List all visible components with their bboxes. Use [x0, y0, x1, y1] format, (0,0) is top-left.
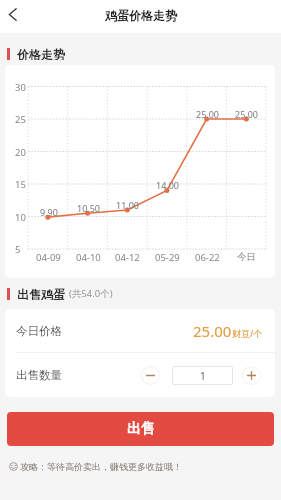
staticText: 25: [15, 113, 26, 126]
button[interactable]: 出售: [7, 412, 274, 446]
staticText: 15: [15, 178, 26, 191]
staticText: 1: [200, 369, 206, 383]
staticText: 25.00: [196, 108, 220, 120]
staticText: 今日: [237, 251, 256, 263]
staticText: 11.00: [116, 199, 140, 211]
staticText: 出售: [127, 420, 155, 438]
staticText: 30: [15, 81, 26, 94]
staticText: 出售数量: [16, 368, 62, 382]
staticText: 20: [15, 146, 26, 159]
staticText: 04-09: [36, 251, 61, 264]
button[interactable]: Increase quantity: [242, 366, 261, 385]
staticText: 攻略：等待高价卖出，赚钱更多收益哦！: [20, 461, 182, 472]
staticText: 04-12: [115, 251, 140, 264]
staticText: 价格走势: [17, 47, 65, 60]
staticText: 25.00: [235, 108, 259, 120]
staticText: 25.00: [193, 321, 232, 341]
staticText: 05-29: [155, 251, 180, 264]
staticText: 04-10: [76, 251, 101, 264]
staticText: (共54.0个): [69, 287, 113, 300]
staticText: 5: [15, 243, 21, 256]
staticText: 06-22: [195, 251, 220, 264]
staticText: 14.00: [156, 179, 180, 191]
staticText: 今日价格: [16, 324, 62, 338]
staticText: 出售鸡蛋: [17, 287, 65, 300]
staticText: 9.90: [40, 206, 58, 218]
staticText: 10: [15, 211, 26, 224]
staticText: 财豆/个: [232, 327, 263, 339]
button[interactable]: Back: [0, 2, 25, 27]
staticText: 10.50: [77, 202, 101, 214]
staticText: 鸡蛋价格走势: [105, 8, 177, 23]
button[interactable]: Decrease quantity: [141, 366, 160, 385]
